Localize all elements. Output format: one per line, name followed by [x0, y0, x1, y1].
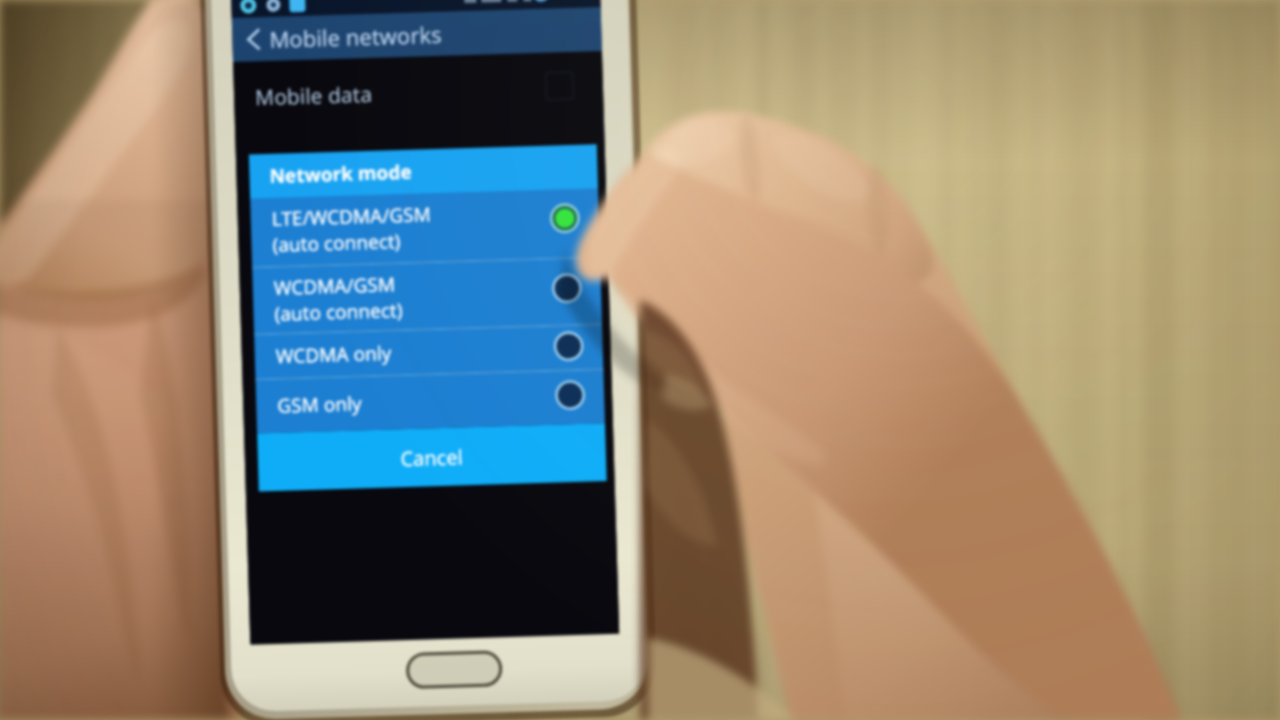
button[interactable]: WCDMA only	[255, 329, 603, 374]
button[interactable]: LTE/WCDMA/GSM (auto connect)	[255, 193, 603, 262]
button[interactable]: Cancel	[255, 428, 603, 486]
button[interactable]: Mobile data	[242, 62, 611, 124]
button[interactable]: WCDMA/GSM (auto connect)	[255, 262, 603, 329]
button[interactable]: Back	[244, 13, 290, 57]
button[interactable]: Mobile networks	[290, 13, 608, 57]
button[interactable]: GSM only	[255, 374, 603, 428]
button[interactable]: Home	[397, 652, 493, 688]
